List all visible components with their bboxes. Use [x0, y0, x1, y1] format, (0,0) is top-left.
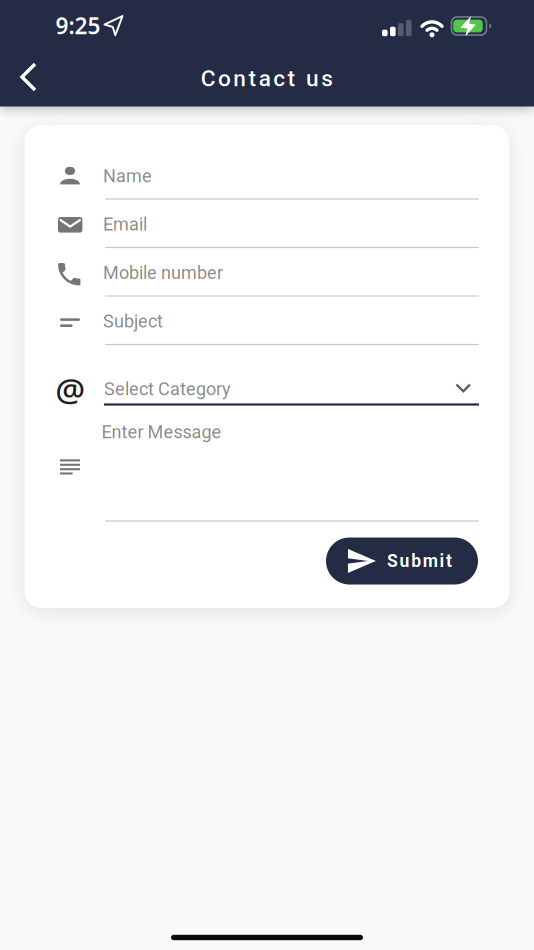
staticText: Email	[103, 214, 147, 235]
button[interactable]: S	[326, 537, 478, 584]
staticText: u	[306, 65, 319, 92]
staticText: t	[446, 551, 452, 571]
staticText: Name	[103, 165, 152, 187]
staticText: 9:25	[55, 10, 100, 40]
staticText: m	[423, 551, 438, 571]
staticText: o	[218, 65, 231, 92]
button[interactable]: Select Category	[104, 369, 479, 409]
staticText: t	[249, 65, 257, 92]
staticText: b	[411, 551, 421, 571]
staticText: n	[233, 65, 246, 92]
staticText: Subject	[103, 311, 163, 332]
staticText: S	[387, 551, 398, 571]
staticText: a	[259, 65, 271, 92]
staticText: t	[287, 65, 295, 92]
button[interactable]: Back	[4, 51, 52, 103]
staticText: u	[400, 551, 410, 571]
staticText: C	[201, 65, 216, 92]
staticText: Select Category	[104, 378, 231, 400]
staticText: s	[321, 65, 333, 92]
staticText: Enter Message	[101, 421, 221, 443]
staticText: i	[439, 551, 444, 571]
staticText: Mobile number	[103, 262, 223, 283]
staticText: c	[273, 65, 285, 92]
staticText: @	[55, 367, 85, 411]
